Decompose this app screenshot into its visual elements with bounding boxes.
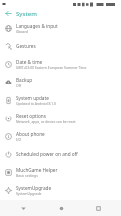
staticText: GMT+03:00 Eastern European Summer Time xyxy=(16,65,87,70)
button[interactable]: Date & time xyxy=(0,55,121,73)
button[interactable]: Backup xyxy=(0,73,121,91)
button[interactable]: Home xyxy=(46,200,76,216)
staticText: Network, apps, or device can be reset xyxy=(16,119,76,124)
button[interactable]: SystemUpgrade xyxy=(0,181,121,199)
staticText: Off xyxy=(16,83,21,88)
button[interactable]: Back xyxy=(8,200,38,216)
staticText: System update xyxy=(16,95,49,101)
staticText: Gboard xyxy=(16,29,28,34)
staticText: MuchGame Helper xyxy=(16,167,58,173)
staticText: Date & time xyxy=(16,59,43,65)
staticText: SystemUpgrade xyxy=(16,185,52,191)
staticText: Backup xyxy=(16,77,33,83)
button[interactable]: System update xyxy=(0,91,121,109)
button[interactable]: Recents xyxy=(83,200,113,216)
staticText: System xyxy=(16,10,37,18)
button[interactable]: Back xyxy=(0,8,16,19)
staticText: Scheduled power on and off xyxy=(16,151,78,157)
staticText: Basic settings xyxy=(16,173,38,178)
button[interactable]: About phone xyxy=(0,127,121,145)
staticText: Reset options xyxy=(16,113,46,119)
staticText: About phone xyxy=(16,131,45,137)
staticText: Updated to Android 8.1.0 xyxy=(16,101,57,106)
staticText: SystemUpgrade xyxy=(16,191,42,196)
button[interactable]: Languages & input xyxy=(0,19,121,37)
button[interactable]: Scheduled power on and off xyxy=(0,145,121,163)
staticText: Languages & input xyxy=(16,23,58,29)
staticText: I/O xyxy=(16,137,22,142)
button[interactable]: Reset options xyxy=(0,109,121,127)
staticText: Gestures xyxy=(16,43,36,49)
button[interactable]: Gestures xyxy=(0,37,121,55)
button[interactable]: MuchGame Helper xyxy=(0,163,121,181)
